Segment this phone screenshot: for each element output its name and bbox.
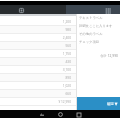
button[interactable]: ¥ 12,990: [0, 98, 76, 106]
button[interactable]: 2,400: [0, 34, 76, 42]
button[interactable]: 430: [0, 58, 76, 66]
button[interactable]: 1,020: [0, 82, 76, 90]
staticText: 430: [65, 60, 71, 64]
button[interactable]: Home: [57, 111, 64, 118]
staticText: 660: [65, 92, 71, 96]
staticText: 合計 12,990: [77, 53, 118, 58]
staticText: 1,020: [62, 84, 71, 88]
button[interactable]: 890: [0, 74, 76, 82]
staticText: 560: [65, 44, 71, 48]
button[interactable]: 確定 ▼: [77, 97, 120, 110]
staticText: 1,750: [62, 52, 71, 56]
staticText: ¥ 12,990: [58, 100, 71, 104]
staticText: その他のラベル: [79, 32, 103, 36]
button[interactable]: 660: [0, 90, 76, 98]
button[interactable]: 1,200: [0, 18, 76, 26]
button[interactable]: App icon: [19, 8, 24, 13]
button[interactable]: 560: [0, 42, 76, 50]
staticText: 2,400: [62, 36, 71, 40]
button[interactable]: 3,100: [0, 66, 76, 74]
button[interactable]: 1,750: [0, 50, 76, 58]
button[interactable]: Overflow menu: [105, 8, 111, 14]
staticText: チェック項目: [79, 40, 100, 44]
button[interactable]: 980: [0, 26, 76, 34]
staticText: 890: [65, 76, 71, 80]
staticText: テキストラベル: [79, 16, 103, 20]
staticText: 980: [65, 28, 71, 32]
staticText: 確定 ▼: [107, 101, 118, 106]
button[interactable]: Recents: [75, 111, 82, 118]
button[interactable]: Back: [38, 111, 45, 118]
staticText: 3,100: [62, 68, 71, 72]
staticText: 1,200: [62, 20, 71, 24]
staticText: 説明文ここに入ります: [79, 24, 113, 28]
